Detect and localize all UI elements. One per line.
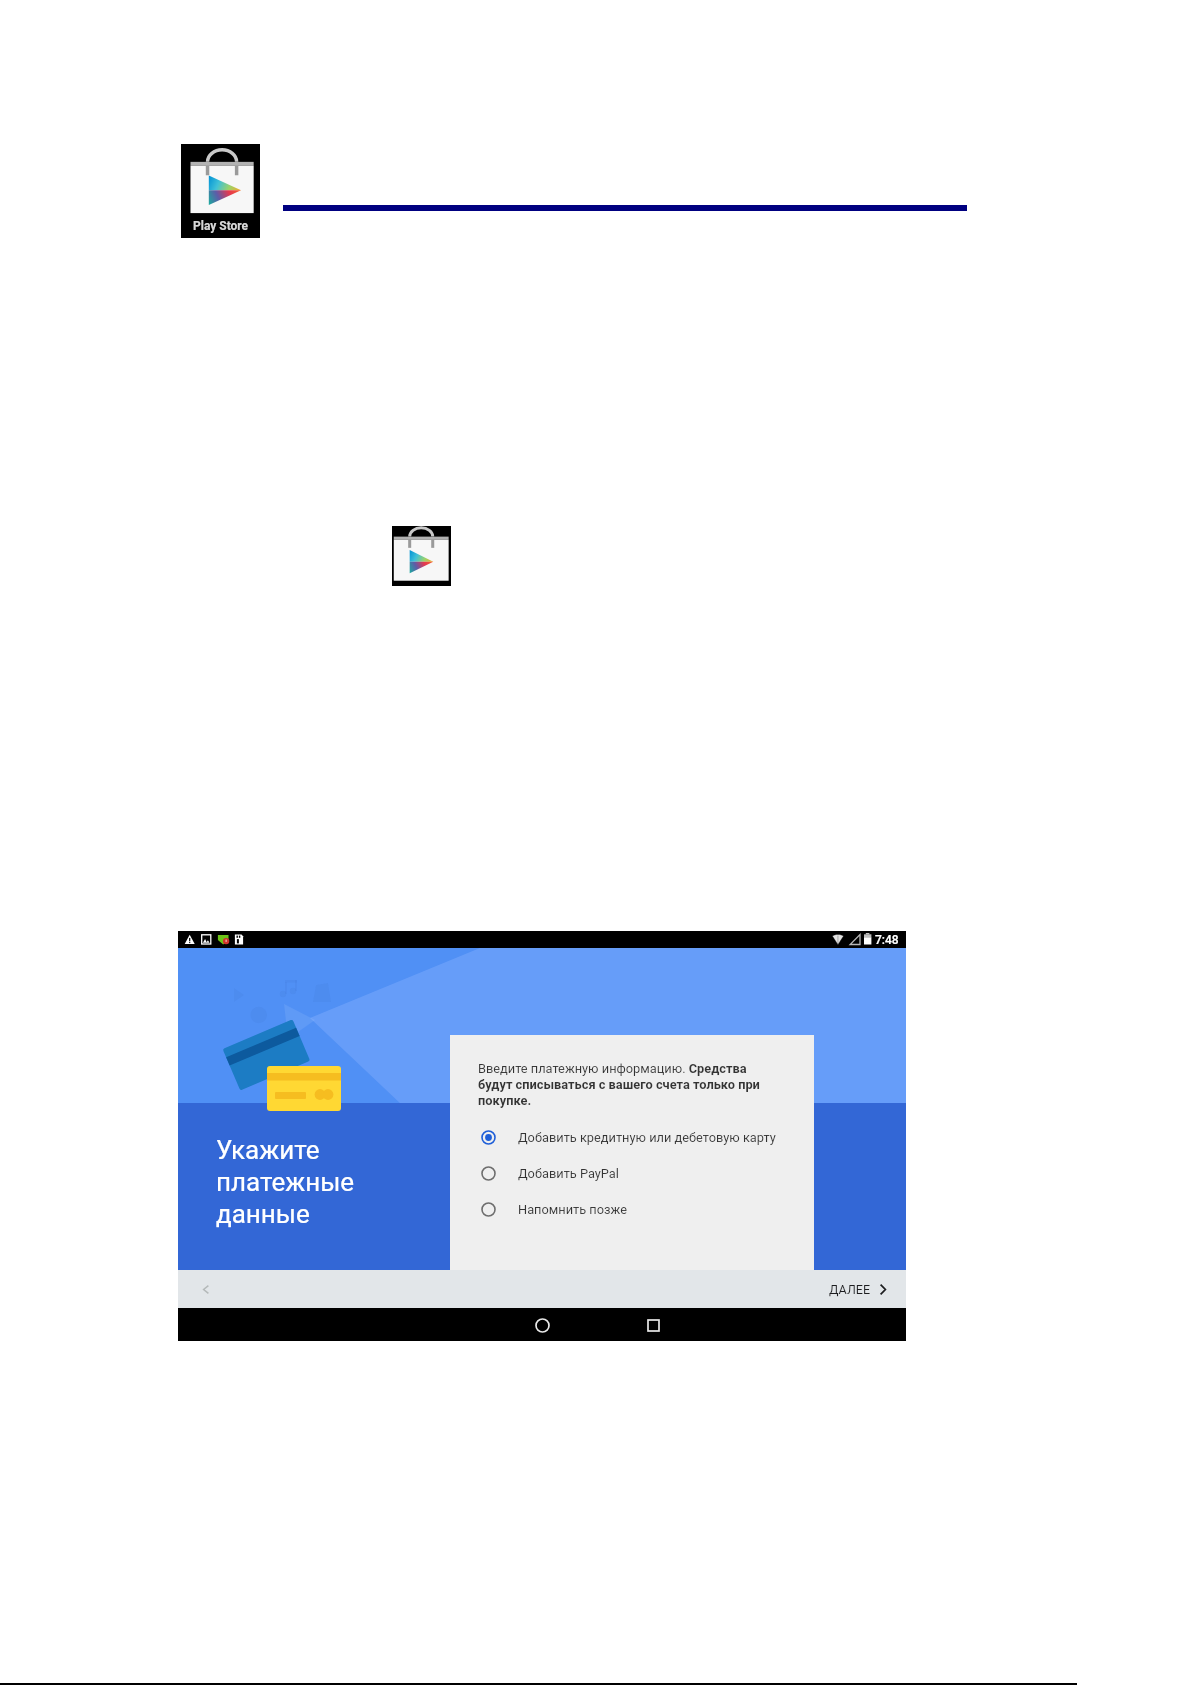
staticText: Добавить PayPal	[518, 1166, 619, 1181]
button[interactable]: Home	[527, 1310, 557, 1340]
staticText: Play Store	[193, 219, 249, 233]
staticText: Введите платежную информацию. Средства б…	[478, 1061, 778, 1108]
button[interactable]: Добавить PayPal	[450, 1155, 814, 1191]
button[interactable]: Back	[192, 1275, 220, 1303]
button[interactable]: Напомнить позже	[450, 1191, 814, 1227]
button[interactable]: ДАЛЕЕ	[829, 1282, 886, 1297]
button[interactable]: Recents	[638, 1310, 668, 1340]
staticText: 7:48	[875, 933, 899, 947]
staticText: ДАЛЕЕ	[829, 1282, 871, 1297]
button[interactable]: Добавить кредитную или дебетовую карту	[450, 1119, 814, 1155]
staticText: Напомнить позже	[518, 1202, 627, 1217]
staticText: Укажите	[216, 1135, 320, 1165]
staticText: данные	[216, 1199, 310, 1229]
button[interactable]: Play Store	[392, 526, 451, 586]
button[interactable]: Play Store	[181, 144, 260, 238]
staticText: платежные	[216, 1167, 355, 1197]
staticText: Добавить кредитную или дебетовую карту	[518, 1130, 776, 1145]
